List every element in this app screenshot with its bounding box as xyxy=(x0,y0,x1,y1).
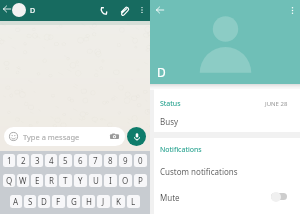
button[interactable]: 5 xyxy=(59,154,72,167)
staticText: T xyxy=(63,175,68,186)
button[interactable]: H xyxy=(82,195,95,208)
button[interactable]: Back xyxy=(1,3,13,15)
button[interactable]: Contact photo xyxy=(12,3,26,17)
button[interactable]: 3 xyxy=(31,154,43,167)
staticText: 9 xyxy=(123,155,128,166)
staticText: F xyxy=(56,196,61,207)
staticText: L xyxy=(131,196,136,207)
staticText: S xyxy=(28,196,33,207)
button[interactable]: Custom notifications xyxy=(154,162,300,184)
staticText: 2 xyxy=(21,155,26,166)
button[interactable]: P xyxy=(134,174,147,187)
staticText: D xyxy=(30,6,36,16)
staticText: 1 xyxy=(7,155,12,166)
button[interactable]: Voice message xyxy=(127,127,146,146)
staticText: 5 xyxy=(63,155,68,166)
staticText: I xyxy=(109,175,112,186)
button[interactable]: 2 xyxy=(17,154,29,167)
staticText: D xyxy=(41,196,47,207)
button[interactable]: 0 xyxy=(134,154,147,167)
staticText: JUNE 28 xyxy=(265,100,288,108)
button[interactable]: More options xyxy=(285,3,299,17)
staticText: 0 xyxy=(138,155,143,166)
button[interactable]: Attach xyxy=(117,4,130,17)
staticText: 8 xyxy=(108,155,113,166)
button[interactable]: G xyxy=(67,195,80,208)
button[interactable]: 4 xyxy=(45,154,57,167)
button[interactable]: Back xyxy=(152,2,168,18)
staticText: G xyxy=(71,196,77,207)
button[interactable]: U xyxy=(89,174,102,187)
button[interactable]: L xyxy=(127,195,140,208)
button[interactable]: More options xyxy=(136,4,147,15)
staticText: K xyxy=(116,196,121,207)
staticText: Y xyxy=(78,175,83,186)
staticText: D xyxy=(157,64,166,80)
button[interactable]: E xyxy=(31,174,43,187)
button[interactable]: 1 xyxy=(3,154,15,167)
staticText: U xyxy=(93,175,99,186)
staticText: Q xyxy=(6,175,13,186)
button[interactable]: J xyxy=(97,195,110,208)
staticText: 3 xyxy=(35,155,40,166)
button[interactable]: T xyxy=(59,174,72,187)
staticText: O xyxy=(122,175,129,186)
staticText: Type a message xyxy=(23,132,80,142)
staticText: E xyxy=(35,175,40,186)
staticText: R xyxy=(49,175,54,186)
button[interactable]: Mute xyxy=(154,188,300,210)
staticText: 6 xyxy=(78,155,83,166)
staticText: W xyxy=(19,175,27,186)
button[interactable]: I xyxy=(104,174,117,187)
button[interactable]: A xyxy=(10,195,22,208)
button[interactable]: Busy xyxy=(154,112,300,131)
button[interactable]: Q xyxy=(3,174,15,187)
button[interactable]: K xyxy=(112,195,125,208)
button[interactable]: F xyxy=(52,195,65,208)
staticText: H xyxy=(86,196,92,207)
staticText: 7 xyxy=(93,155,98,166)
staticText: Notifications xyxy=(160,145,202,155)
button[interactable]: O xyxy=(119,174,132,187)
button[interactable]: 8 xyxy=(104,154,117,167)
staticText: P xyxy=(138,175,143,186)
staticText: J xyxy=(102,196,105,207)
staticText: Status xyxy=(160,99,181,109)
button[interactable]: 7 xyxy=(89,154,102,167)
button[interactable]: R xyxy=(45,174,57,187)
button[interactable]: S xyxy=(24,195,36,208)
staticText: Busy xyxy=(160,116,179,127)
button[interactable]: Call xyxy=(97,4,110,17)
button[interactable]: 6 xyxy=(74,154,87,167)
button[interactable]: 9 xyxy=(119,154,132,167)
button[interactable]: Type a message xyxy=(4,127,125,146)
button[interactable]: W xyxy=(17,174,29,187)
button[interactable]: D xyxy=(38,195,50,208)
staticText: Mute xyxy=(160,192,180,203)
staticText: A xyxy=(13,196,19,207)
staticText: 4 xyxy=(49,155,54,166)
staticText: Custom notifications xyxy=(160,166,238,177)
button[interactable]: Y xyxy=(74,174,87,187)
